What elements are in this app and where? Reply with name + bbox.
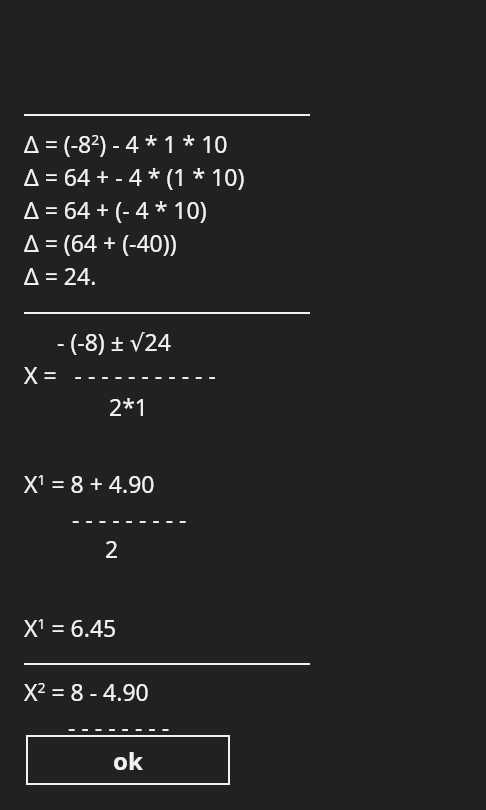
staticText: 2*1 (109, 391, 148, 422)
staticText: Δ = (64 + (-40)) (24, 227, 177, 258)
staticText: - - - - - - - - (68, 711, 170, 742)
staticText: X2 = 8 - 4.90 (24, 676, 149, 707)
staticText: X1 = 8 + 4.90 (24, 468, 155, 499)
staticText: ok (113, 744, 143, 777)
staticText: Δ = (-82) - 4 * 1 * 10 (24, 128, 228, 159)
staticText: - (-8) ± √24 (57, 326, 171, 357)
button[interactable]: ok (26, 735, 230, 785)
staticText: Δ = 24. (24, 260, 97, 291)
staticText: Δ = 64 + - 4 * (1 * 10) (24, 161, 245, 192)
staticText: X = - - - - - - - - - - - (24, 359, 216, 390)
staticText: - - - - - - - - - (72, 503, 187, 534)
staticText: 2 (105, 533, 119, 564)
staticText: X1 = 6.45 (24, 612, 117, 643)
staticText: Δ = 64 + (- 4 * 10) (24, 194, 207, 225)
